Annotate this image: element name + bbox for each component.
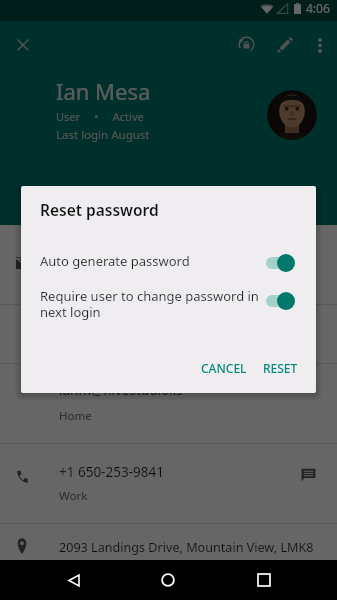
staticText: User • Active: [56, 109, 144, 124]
staticText: 2093 Landings Drive, Mountain View, LMK8: [59, 539, 314, 556]
button[interactable]: [0, 364, 337, 444]
button[interactable]: Home: [146, 560, 190, 600]
button[interactable]: Profile photo: [267, 90, 317, 140]
button[interactable]: [0, 444, 337, 524]
button[interactable]: [0, 524, 337, 600]
staticText: Work: [59, 488, 88, 504]
button[interactable]: Recent apps: [242, 560, 286, 600]
button[interactable]: [0, 225, 337, 304]
button[interactable]: [0, 305, 337, 364]
button[interactable]: RESET: [255, 353, 306, 383]
staticText: Require user to change password in next …: [40, 287, 259, 320]
button[interactable]: Edit: [266, 27, 302, 63]
button[interactable]: Reset password: [228, 26, 264, 62]
staticText: +1 650-253-9841: [59, 463, 164, 481]
staticText: Last login August: [56, 127, 150, 143]
staticText: Home: [59, 408, 92, 424]
staticText: Auto generate password: [40, 252, 190, 270]
staticText: Reset password: [40, 199, 159, 220]
staticText: 4:06: [306, 0, 330, 16]
staticText: lanm@hivestudio.is: [59, 381, 183, 399]
button[interactable]: Toggle: [264, 290, 298, 312]
button[interactable]: More options: [304, 29, 336, 61]
staticText: RESET: [263, 360, 298, 376]
button[interactable]: CANCEL: [193, 353, 255, 383]
staticText: lanm@hivestudio.is: [59, 244, 183, 262]
button[interactable]: Back: [52, 560, 96, 600]
staticText: CANCEL: [201, 360, 247, 376]
button[interactable]: Close: [6, 28, 39, 61]
button[interactable]: Toggle: [264, 252, 298, 274]
staticText: Ian Mesa: [56, 76, 151, 106]
button[interactable]: Send message: [288, 455, 328, 495]
